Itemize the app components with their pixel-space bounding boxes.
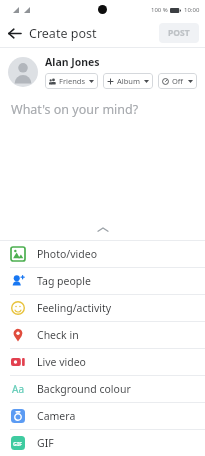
staticText: Aa xyxy=(12,382,24,396)
staticText: Background colour xyxy=(37,382,131,396)
button[interactable]: GIF xyxy=(0,430,205,456)
staticText: Check in xyxy=(37,328,79,342)
staticText: POST xyxy=(168,27,190,39)
button[interactable]: Feeling/activity xyxy=(0,295,205,321)
staticText: 10:00 xyxy=(184,6,200,14)
button[interactable]: Back xyxy=(0,19,28,47)
staticText: What's on your mind? xyxy=(11,101,139,118)
staticText: GIF xyxy=(13,440,23,447)
button[interactable]: Off xyxy=(158,73,197,89)
button[interactable]: Aa xyxy=(0,376,205,402)
button[interactable]: Tag people xyxy=(0,268,205,294)
staticText: Camera xyxy=(37,409,76,423)
staticText: Tag people xyxy=(37,274,91,288)
button[interactable]: Album xyxy=(103,73,153,89)
staticText: 100 % xyxy=(151,6,168,14)
staticText: Alan Jones xyxy=(45,55,100,69)
staticText: Photo/video xyxy=(37,247,98,261)
staticText: Create post xyxy=(29,25,97,42)
staticText: GIF xyxy=(37,436,54,450)
button[interactable]: Photo/video xyxy=(0,241,205,267)
staticText: Live video xyxy=(37,355,86,369)
button[interactable]: Camera xyxy=(0,403,205,429)
button[interactable]: Friends xyxy=(45,73,98,89)
button[interactable]: Live video xyxy=(0,349,205,375)
staticText: Album xyxy=(117,76,140,86)
button[interactable]: Check in xyxy=(0,322,205,348)
staticText: Off xyxy=(172,76,184,86)
button[interactable]: Expand options xyxy=(0,218,205,240)
staticText: Friends xyxy=(59,76,85,86)
staticText: Feeling/activity xyxy=(37,301,112,315)
button[interactable]: POST xyxy=(159,23,199,43)
